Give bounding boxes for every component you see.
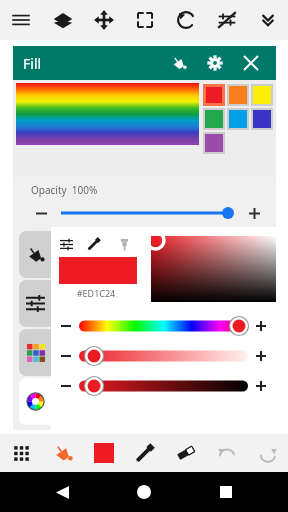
- button[interactable]: Decrease: [57, 377, 75, 395]
- button[interactable]: Decrease: [57, 317, 75, 335]
- button[interactable]: Move: [83, 0, 124, 40]
- button[interactable]: Eraser: [165, 434, 206, 472]
- button[interactable]: Eyedropper: [83, 233, 105, 255]
- button[interactable]: Decrease opacity: [31, 203, 51, 223]
- button[interactable]: Redo: [247, 434, 288, 472]
- button[interactable]: Tab 4: [19, 378, 51, 425]
- button[interactable]: Increase: [252, 317, 270, 335]
- button[interactable]: Menu: [0, 0, 42, 40]
- button[interactable]: Fill tool: [164, 48, 194, 78]
- button[interactable]: Slider: [79, 315, 248, 337]
- button[interactable]: Slider: [79, 375, 248, 397]
- button[interactable]: Color: [83, 434, 124, 472]
- button[interactable]: Snap off: [206, 0, 247, 40]
- button[interactable]: [61, 204, 236, 222]
- button[interactable]: Eyedropper: [124, 434, 165, 472]
- button[interactable]: Decrease: [57, 347, 75, 365]
- button[interactable]: Close: [236, 48, 266, 78]
- button[interactable]: Fill: [42, 434, 83, 472]
- button[interactable]: Recents: [206, 472, 246, 512]
- button[interactable]: Pin: [113, 233, 135, 255]
- staticText: Fill: [23, 54, 42, 73]
- button[interactable]: Layers: [42, 0, 83, 40]
- button[interactable]: Tab 1: [19, 231, 51, 278]
- button[interactable]: Adjust: [55, 233, 77, 255]
- button[interactable]: Increase: [252, 377, 270, 395]
- button[interactable]: Rotate: [165, 0, 206, 40]
- button[interactable]: Collapse: [247, 0, 288, 40]
- button[interactable]: Tab 2: [19, 280, 51, 327]
- button[interactable]: Fullscreen: [124, 0, 165, 40]
- staticText: Opacity 100%: [31, 183, 98, 197]
- button[interactable]: Home: [124, 472, 164, 512]
- button[interactable]: Settings: [200, 48, 230, 78]
- button[interactable]: Tools: [0, 434, 42, 472]
- button[interactable]: Increase opacity: [244, 203, 264, 223]
- button[interactable]: Increase: [252, 347, 270, 365]
- button[interactable]: Back: [42, 472, 82, 512]
- button[interactable]: Tab 3: [19, 329, 51, 376]
- button[interactable]: Undo: [206, 434, 247, 472]
- staticText: #ED1C24: [55, 287, 137, 299]
- button[interactable]: Slider: [79, 345, 248, 367]
- button[interactable]: Gradient palette: [16, 83, 199, 145]
